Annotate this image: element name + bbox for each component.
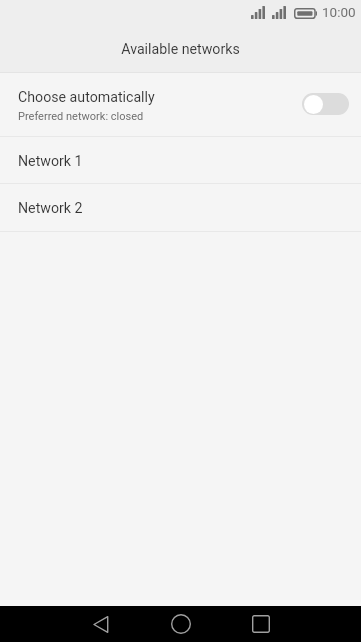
button[interactable]: Recent apps <box>221 606 301 642</box>
staticText: Available networks <box>121 41 240 58</box>
staticText: Network 2 <box>18 200 83 217</box>
staticText: Preferred network: closed <box>18 110 144 123</box>
staticText: Choose automatically <box>18 89 155 106</box>
button[interactable]: Choose automatically toggle <box>302 93 349 115</box>
button[interactable]: Home <box>141 606 221 642</box>
button[interactable]: Back <box>60 606 141 642</box>
button[interactable]: Network 2 <box>0 184 361 231</box>
button[interactable]: Choose automatically <box>0 73 361 136</box>
button[interactable]: Network 1 <box>0 137 361 183</box>
staticText: 10:00 <box>322 4 356 20</box>
staticText: Network 1 <box>18 153 83 170</box>
